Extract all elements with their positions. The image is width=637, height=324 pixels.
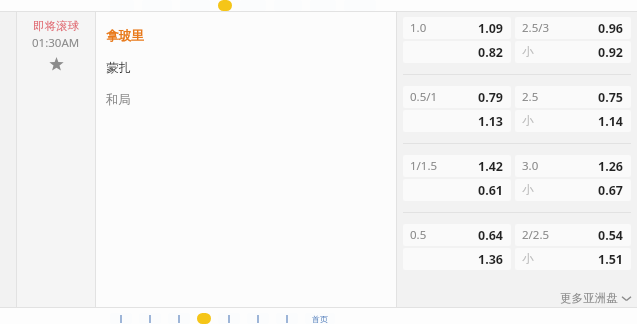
button[interactable]: 2/2.5 (515, 224, 631, 246)
staticText: 1.0 (410, 20, 427, 36)
staticText: 1.13 (478, 113, 503, 130)
staticText: 2.5/3 (522, 20, 550, 36)
staticText: 小 (522, 183, 534, 197)
button[interactable]: Window (168, 313, 190, 324)
button[interactable]: 0.61 (403, 179, 511, 201)
staticText: 01:30AM (32, 35, 80, 51)
button[interactable]: 1.36 (403, 248, 511, 270)
button[interactable]: Emoji (218, 0, 232, 11)
staticText: 更多亚洲盘 (560, 291, 618, 305)
staticText: 0.75 (598, 89, 623, 106)
button[interactable]: 即将滚球 (17, 12, 95, 307)
staticText: 小 (522, 45, 534, 59)
button[interactable]: 1/1.5 (403, 155, 511, 177)
button[interactable]: 3.0 (515, 155, 631, 177)
staticText: 2.5 (522, 89, 539, 105)
button[interactable]: 2.5/3 (515, 17, 631, 39)
button[interactable]: 更多亚洲盘 (560, 291, 631, 305)
staticText: 0.82 (478, 44, 503, 61)
staticText: 0.67 (598, 182, 623, 199)
staticText: 0.96 (598, 20, 623, 37)
button[interactable]: Play (139, 313, 161, 324)
staticText: 首页 (312, 314, 328, 324)
button[interactable]: 0.5 (403, 224, 511, 246)
button[interactable]: 小 (515, 41, 631, 63)
staticText: 1.42 (478, 158, 503, 175)
staticText: 1/1.5 (410, 158, 438, 174)
button[interactable]: Star (218, 313, 240, 324)
staticText: 0.61 (478, 182, 503, 199)
button[interactable]: Refresh (276, 313, 298, 324)
staticText: 0.92 (598, 44, 623, 61)
staticText: 0.64 (478, 227, 503, 244)
staticText: 3.0 (522, 158, 539, 174)
staticText: 1.14 (598, 113, 623, 130)
button[interactable]: Save (247, 313, 269, 324)
staticText: 蒙扎 (106, 60, 131, 76)
button[interactable]: 拿玻里 (106, 28, 144, 44)
button[interactable]: 1.13 (403, 110, 511, 132)
staticText: 0.79 (478, 89, 503, 106)
staticText: 即将滚球 (33, 19, 79, 33)
button[interactable]: 蒙扎 (106, 60, 131, 76)
button[interactable]: 小 (515, 110, 631, 132)
button[interactable]: 小 (515, 248, 631, 270)
staticText: 1.36 (478, 251, 503, 268)
staticText: 0.5/1 (410, 89, 438, 105)
button[interactable]: 1.0 (403, 17, 511, 39)
staticText: 1.26 (598, 158, 623, 175)
staticText: 小 (522, 252, 534, 266)
button[interactable]: 小 (515, 179, 631, 201)
staticText: 拿玻里 (106, 28, 144, 44)
staticText: 和局 (106, 92, 131, 108)
button[interactable]: 和局 (106, 92, 131, 108)
button[interactable]: Download (110, 313, 132, 324)
button[interactable]: 0.82 (403, 41, 511, 63)
button[interactable]: Emoji (197, 313, 211, 324)
button[interactable]: 2.5 (515, 86, 631, 108)
button[interactable]: Favourite (49, 57, 64, 72)
staticText: 2/2.5 (522, 227, 550, 243)
button[interactable]: 首页 (305, 313, 335, 324)
button[interactable]: 0.5/1 (403, 86, 511, 108)
staticText: 小 (522, 114, 534, 128)
staticText: 0.54 (598, 227, 623, 244)
staticText: 1.09 (478, 20, 503, 37)
staticText: 0.5 (410, 227, 427, 243)
staticText: 1.51 (598, 251, 623, 268)
